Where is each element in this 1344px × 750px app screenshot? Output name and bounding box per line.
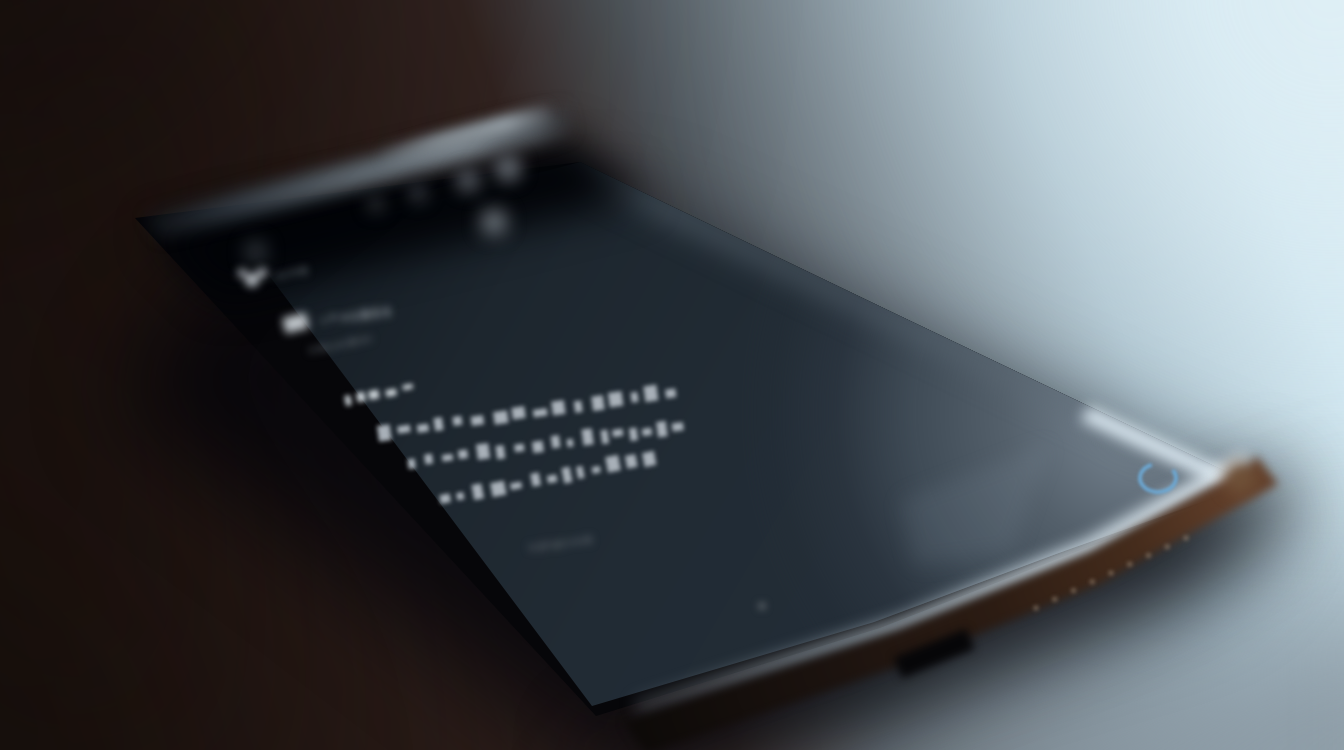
- button[interactable]: Smartphone displaying a message on a dar…: [0, 0, 1344, 750]
